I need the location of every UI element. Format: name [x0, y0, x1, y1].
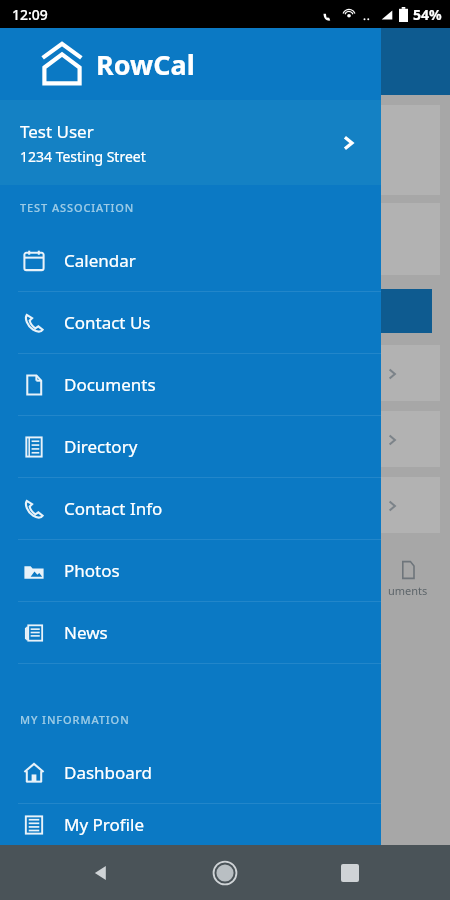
staticText: 54%	[413, 5, 442, 24]
staticText: Contact Us	[64, 311, 151, 334]
button[interactable]: Calendar	[0, 230, 381, 291]
staticText: Directory	[64, 435, 138, 458]
button[interactable]: Contact Info	[0, 478, 381, 539]
staticText: Contact Info	[64, 497, 163, 520]
button[interactable]: News	[0, 602, 381, 663]
staticText: Calendar	[64, 249, 136, 272]
staticText: 1234 Testing Street	[20, 147, 146, 166]
button[interactable]: Test User	[0, 100, 381, 185]
staticText: Account	[18, 141, 72, 160]
button[interactable]: Documents	[0, 354, 381, 415]
staticText: uments	[388, 583, 428, 598]
button[interactable]: My Profile	[0, 804, 381, 845]
staticText: TEST ASSOCIATION	[20, 200, 135, 215]
button[interactable]: Directory	[0, 416, 381, 477]
staticText: MY INFORMATION	[20, 712, 130, 727]
button[interactable]: Contact Us	[0, 292, 381, 353]
button[interactable]: Photos	[0, 540, 381, 601]
staticText: My Profile	[64, 813, 144, 836]
button[interactable]: Recent apps	[326, 849, 374, 897]
button[interactable]: Back	[77, 849, 125, 897]
staticText: Documents	[64, 373, 156, 396]
staticText: Test User	[20, 120, 94, 143]
staticText: Dashboard	[64, 761, 153, 784]
staticText: Photos	[64, 559, 120, 582]
staticText: News	[64, 621, 108, 644]
staticText: RowCal	[96, 46, 195, 83]
button[interactable]: Home	[201, 849, 249, 897]
staticText: 12:09	[12, 5, 48, 24]
button[interactable]: Dashboard	[0, 742, 381, 803]
